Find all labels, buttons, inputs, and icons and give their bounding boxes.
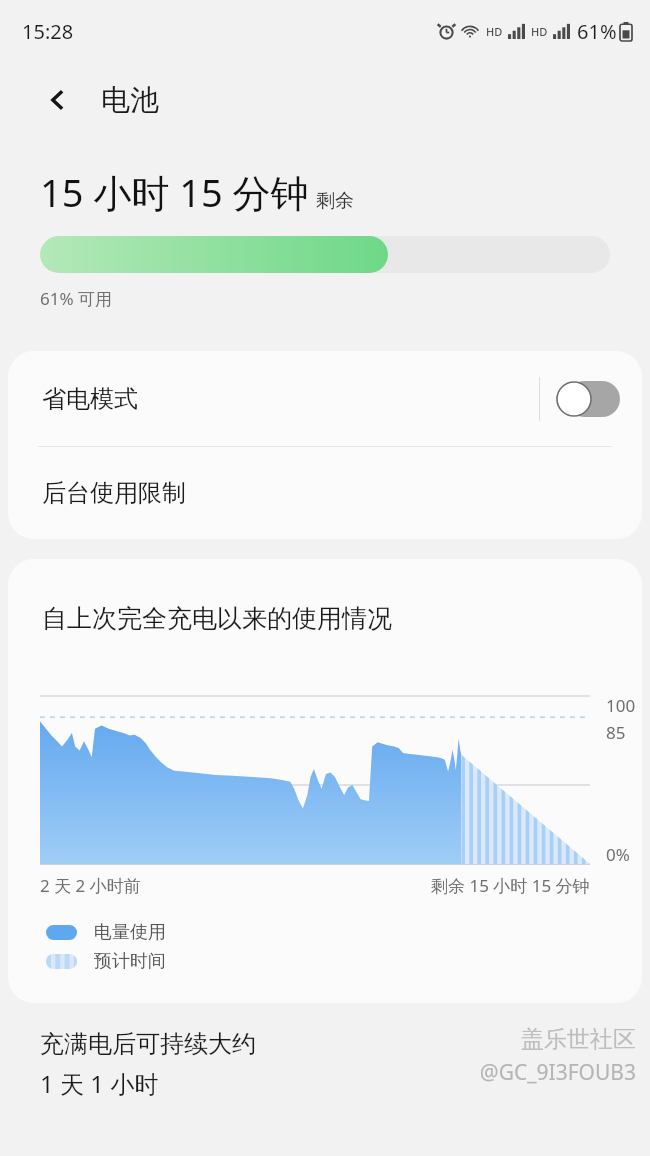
staticText: 电池 [101, 82, 159, 119]
staticText: HD [531, 24, 548, 39]
staticText: 85 [606, 721, 626, 744]
staticText: 充满电后可持续大约 [40, 1029, 256, 1059]
staticText: 预计时间 [94, 950, 166, 973]
staticText: 1 天 1 小时 [40, 1067, 159, 1100]
staticText: 100 [606, 694, 636, 717]
staticText: 盖乐世社区 [521, 1025, 636, 1054]
staticText: 15:28 [22, 18, 74, 45]
button[interactable]: Power saving toggle [556, 381, 620, 417]
button[interactable]: Back [36, 78, 80, 122]
staticText: 省电模式 [42, 384, 138, 414]
staticText: 61% 可用 [40, 287, 112, 310]
staticText: HD [486, 24, 503, 39]
staticText: 自上次完全充电以来的使用情况 [42, 603, 392, 634]
staticText: 电量使用 [94, 921, 166, 944]
staticText: 后台使用限制 [42, 478, 186, 508]
staticText: 61% [577, 18, 617, 45]
staticText: 剩余 [316, 189, 354, 213]
staticText: 剩余 15 小时 15 分钟 [431, 874, 590, 897]
staticText: 2 天 2 小时前 [40, 874, 141, 897]
staticText: @GC_9I3FOUB3 [479, 1058, 636, 1087]
button[interactable]: 省电模式 [8, 351, 642, 446]
staticText: 15 小时 15 分钟 [40, 166, 309, 218]
button[interactable]: 后台使用限制 [8, 447, 642, 539]
staticText: 0% [606, 843, 630, 866]
